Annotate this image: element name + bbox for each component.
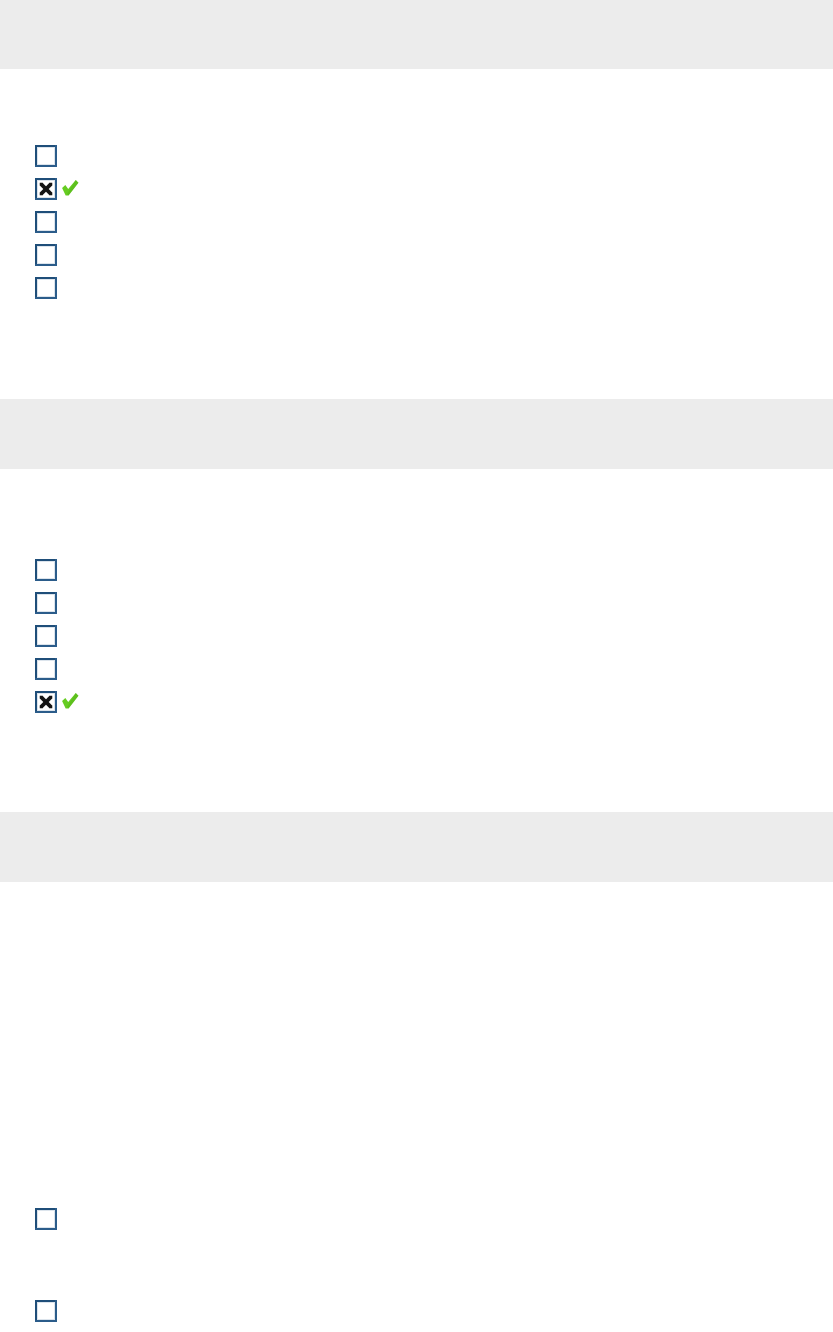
button[interactable]: Unchecked option [35, 592, 57, 614]
button[interactable]: Unchecked option [35, 1208, 57, 1230]
button[interactable]: Unchecked option [0, 1294, 833, 1327]
other: Correct [61, 179, 79, 197]
button[interactable]: Checked option [35, 691, 57, 713]
button[interactable]: Unchecked option [35, 1300, 57, 1322]
button[interactable]: Unchecked option [0, 238, 833, 271]
button[interactable]: Unchecked option [0, 586, 833, 619]
button[interactable]: Unchecked option [0, 652, 833, 685]
button[interactable]: Unchecked option [35, 211, 57, 233]
button[interactable]: Unchecked option [0, 205, 833, 238]
button[interactable]: Unchecked option [0, 1202, 833, 1235]
other: Correct [61, 692, 79, 710]
button[interactable]: Unchecked option [35, 559, 57, 581]
button[interactable]: Unchecked option [0, 271, 833, 304]
button[interactable]: Unchecked option [35, 658, 57, 680]
button[interactable]: Unchecked option [35, 625, 57, 647]
button[interactable]: Checked option [0, 685, 833, 718]
button[interactable]: Unchecked option [35, 145, 57, 167]
button[interactable]: Unchecked option [0, 139, 833, 172]
button[interactable]: Unchecked option [35, 244, 57, 266]
button[interactable]: Unchecked option [0, 619, 833, 652]
button[interactable]: Checked option [35, 178, 57, 200]
button[interactable]: Checked option [0, 172, 833, 205]
button[interactable]: Unchecked option [35, 277, 57, 299]
button[interactable]: Unchecked option [0, 553, 833, 586]
